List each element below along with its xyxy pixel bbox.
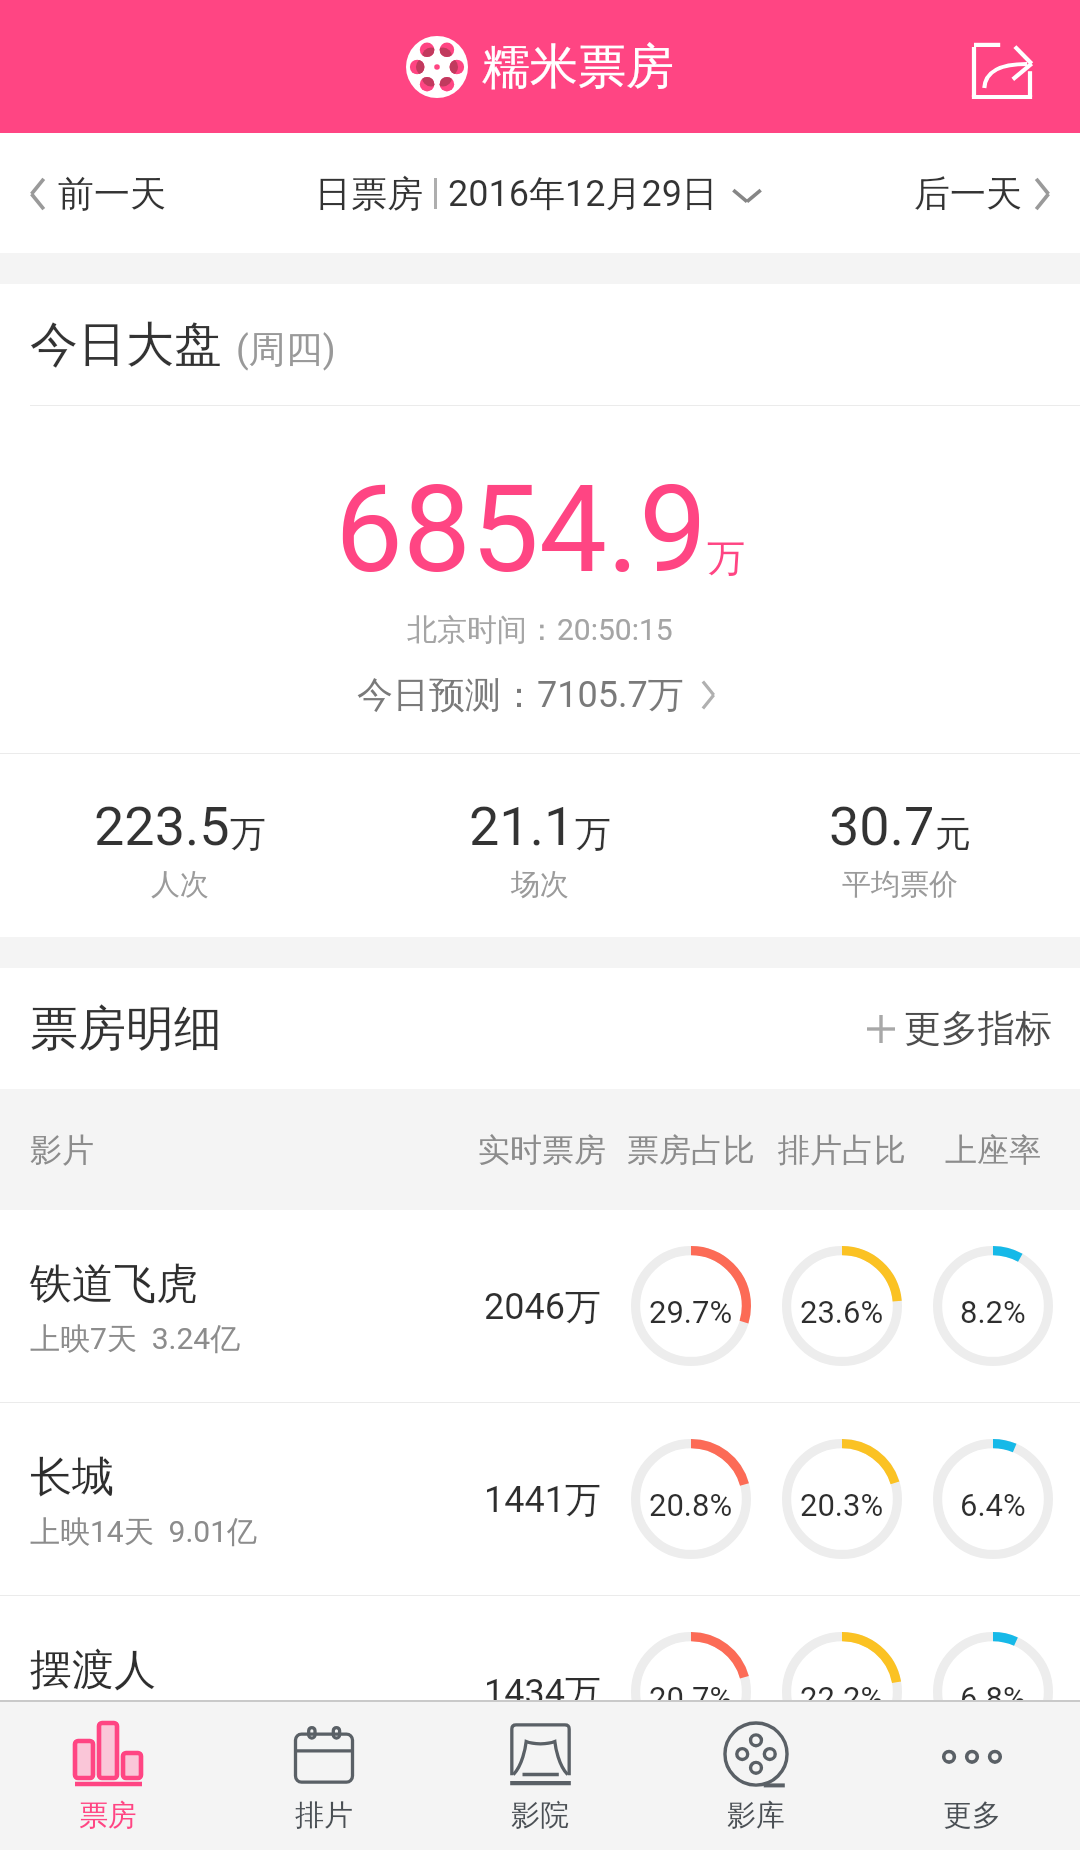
- staticText: 1441万: [484, 1477, 601, 1522]
- staticText: 日票房: [315, 171, 423, 216]
- staticText: 21.1: [469, 795, 575, 858]
- button[interactable]: 更多指标: [867, 1005, 1052, 1052]
- staticText: 万: [707, 534, 745, 582]
- staticText: 万: [575, 811, 611, 856]
- staticText: 实时票房: [478, 1130, 606, 1170]
- staticText: 更多: [943, 1797, 1001, 1834]
- staticText: 北京时间：20:50:15: [407, 611, 673, 649]
- staticText: 万: [230, 811, 266, 856]
- staticText: 今日大盘: [30, 315, 222, 375]
- staticText: 223.5: [94, 795, 230, 858]
- staticText: 上映7天 3.24亿: [30, 1320, 241, 1358]
- staticText: 30.7: [829, 795, 935, 858]
- staticText: 影片: [30, 1130, 94, 1170]
- staticText: 上座率: [945, 1130, 1041, 1170]
- staticText: 影库: [727, 1797, 785, 1834]
- staticText: 影院: [511, 1797, 569, 1834]
- staticText: 6854.9: [335, 459, 707, 601]
- button[interactable]: 影院: [432, 1702, 648, 1850]
- staticText: 长城: [30, 1451, 114, 1504]
- staticText: 排片占比: [778, 1130, 906, 1170]
- button[interactable]: Share: [952, 24, 1052, 110]
- button[interactable]: 后一天: [914, 171, 1060, 216]
- staticText: 后一天: [914, 171, 1022, 216]
- staticText: 更多指标: [904, 1005, 1052, 1052]
- staticText: 1434万: [484, 1670, 601, 1715]
- staticText: 2016年12月29日: [448, 171, 718, 216]
- staticText: 元: [935, 811, 971, 856]
- button[interactable]: 票房: [0, 1702, 216, 1850]
- staticText: 糯米票房: [482, 37, 674, 97]
- staticText: 排片: [295, 1797, 353, 1834]
- button[interactable]: 前一天: [20, 171, 166, 216]
- staticText: 今日预测：7105.7万: [357, 672, 684, 717]
- staticText: (周四): [236, 326, 336, 373]
- staticText: 22.2%: [800, 1680, 884, 1716]
- button[interactable]: 排片: [216, 1702, 432, 1850]
- staticText: 摆渡人: [30, 1644, 156, 1697]
- button[interactable]: 影库: [648, 1702, 864, 1850]
- staticText: 平均票价: [842, 866, 958, 903]
- staticText: 票房明细: [30, 999, 222, 1059]
- staticText: 人次: [151, 866, 209, 903]
- button[interactable]: 日票房: [315, 171, 766, 216]
- staticText: 29.7%: [649, 1294, 733, 1330]
- staticText: 铁道飞虎: [30, 1258, 198, 1311]
- staticText: 上映14天 9.01亿: [30, 1513, 258, 1551]
- staticText: 23.6%: [800, 1294, 884, 1330]
- button[interactable]: 长城: [0, 1403, 1080, 1595]
- staticText: 票房占比: [627, 1130, 755, 1170]
- staticText: 20.3%: [800, 1487, 884, 1523]
- staticText: 前一天: [58, 171, 166, 216]
- staticText: 20.7%: [649, 1680, 733, 1716]
- staticText: 6.8%: [960, 1680, 1026, 1716]
- button[interactable]: 更多: [864, 1702, 1080, 1850]
- button[interactable]: 铁道飞虎: [0, 1210, 1080, 1402]
- staticText: 8.2%: [960, 1294, 1026, 1330]
- button[interactable]: 摆渡人: [0, 1596, 1080, 1788]
- staticText: 票房: [79, 1797, 137, 1834]
- staticText: 上映3天 1.12亿: [30, 1706, 241, 1744]
- staticText: 场次: [511, 866, 569, 903]
- staticText: 6.4%: [960, 1487, 1026, 1523]
- staticText: 2046万: [484, 1284, 601, 1329]
- staticText: 20.8%: [649, 1487, 733, 1523]
- button[interactable]: 今日预测：7105.7万: [357, 672, 724, 717]
